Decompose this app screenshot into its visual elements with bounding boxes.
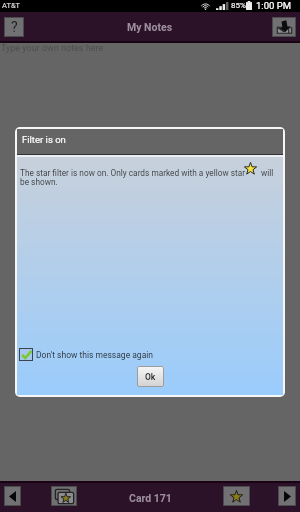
staticText: 1:00 PM (256, 0, 291, 11)
staticText: will (261, 168, 274, 178)
button[interactable]: Previous card (4, 486, 21, 506)
button[interactable]: Import notes (272, 17, 296, 37)
staticText: Don't show this message again (36, 350, 154, 360)
staticText: My Notes (127, 21, 173, 33)
staticText: 85% (231, 1, 246, 10)
staticText: Type your own notes here (1, 43, 104, 54)
button[interactable]: Mark card with star (223, 486, 250, 506)
staticText: AT&T (2, 1, 21, 10)
staticText: Filter is on (22, 134, 66, 145)
staticText: Card 171 (129, 492, 172, 504)
button[interactable]: Ok (137, 366, 164, 387)
button[interactable]: Next card (278, 486, 296, 506)
button[interactable]: Filter starred cards (51, 486, 77, 506)
staticText: Ok (145, 372, 156, 382)
staticText: The star filter is now on. Only cards ma… (20, 168, 246, 178)
button[interactable]: Don't show this message again (19, 348, 154, 361)
staticText: ? (11, 19, 18, 35)
staticText: be shown. (20, 177, 58, 187)
button[interactable]: Help (4, 17, 24, 37)
